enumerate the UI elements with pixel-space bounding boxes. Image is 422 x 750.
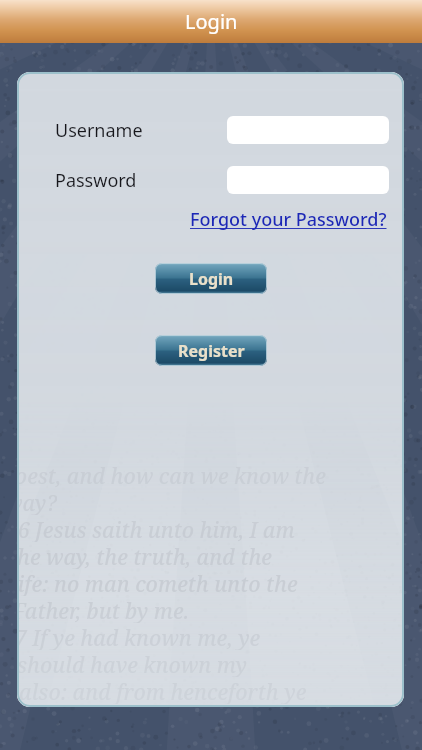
staticText: Login bbox=[185, 8, 238, 35]
staticText: should have known my bbox=[17, 651, 247, 677]
button[interactable]: Login bbox=[155, 263, 267, 294]
button[interactable] bbox=[227, 116, 389, 144]
button[interactable]: Register bbox=[155, 335, 267, 366]
staticText: the way, the truth, and the bbox=[17, 543, 272, 569]
staticText: life: no man cometh unto the bbox=[17, 570, 298, 596]
staticText: Username bbox=[55, 118, 143, 143]
staticText: Forgot your Password? bbox=[190, 207, 387, 232]
staticText: Father, but by me. bbox=[17, 597, 190, 623]
staticText: Password bbox=[55, 168, 137, 193]
staticText: know him bbox=[21, 705, 121, 707]
staticText: Login bbox=[189, 268, 234, 290]
staticText: goest, and how can we know the bbox=[17, 462, 326, 488]
staticText: Register bbox=[178, 340, 245, 362]
button[interactable] bbox=[227, 166, 389, 194]
staticText: 7 If ye had known me, ye bbox=[17, 624, 261, 650]
staticText: way? bbox=[17, 489, 57, 515]
staticText: also: and from henceforth ye bbox=[19, 678, 307, 704]
button[interactable]: Forgot your Password? bbox=[188, 204, 389, 235]
staticText: 6 Jesus saith unto him, I am bbox=[17, 516, 295, 542]
